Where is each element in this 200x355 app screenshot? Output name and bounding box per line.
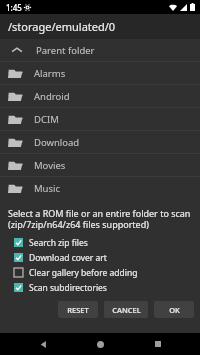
staticText: Movies: [34, 159, 66, 172]
button[interactable]: Movies: [0, 154, 200, 176]
staticText: Download: [34, 136, 80, 149]
staticText: DCIM: [34, 113, 59, 126]
staticText: Scan subdirectories: [29, 282, 107, 294]
button[interactable]: Alarms: [0, 62, 200, 84]
button[interactable]: Android: [0, 85, 200, 107]
staticText: Clear gallery before adding: [29, 267, 138, 279]
button[interactable]: Download: [0, 131, 200, 153]
button[interactable]: Scan subdirectories: [0, 280, 200, 295]
button[interactable]: OK: [154, 301, 194, 318]
staticText: Search zip files: [29, 237, 88, 249]
staticText: Music: [34, 182, 61, 195]
button[interactable]: CANCEL: [104, 301, 148, 318]
button[interactable]: Download cover art: [0, 250, 200, 265]
button[interactable]: Music: [0, 177, 200, 199]
staticText: Download cover art: [29, 252, 107, 264]
button[interactable]: Clear gallery before adding: [0, 265, 200, 280]
staticText: Select a ROM file or an entire folder to…: [8, 207, 191, 231]
button[interactable]: Recent apps: [143, 333, 173, 355]
staticText: /storage/emulated/0: [8, 19, 116, 34]
button[interactable]: RESET: [58, 301, 98, 318]
staticText: RESET: [67, 305, 89, 315]
staticText: CANCEL: [112, 305, 141, 315]
staticText: Parent folder: [36, 44, 95, 57]
button[interactable]: DCIM: [0, 108, 200, 130]
button[interactable]: Parent folder: [0, 39, 200, 61]
staticText: 1:45: [6, 2, 22, 13]
staticText: Android: [34, 90, 70, 103]
button[interactable]: Back: [28, 333, 58, 355]
button[interactable]: Home: [85, 333, 115, 355]
staticText: Alarms: [34, 67, 66, 80]
staticText: OK: [169, 305, 180, 315]
button[interactable]: Search zip files: [0, 235, 200, 250]
